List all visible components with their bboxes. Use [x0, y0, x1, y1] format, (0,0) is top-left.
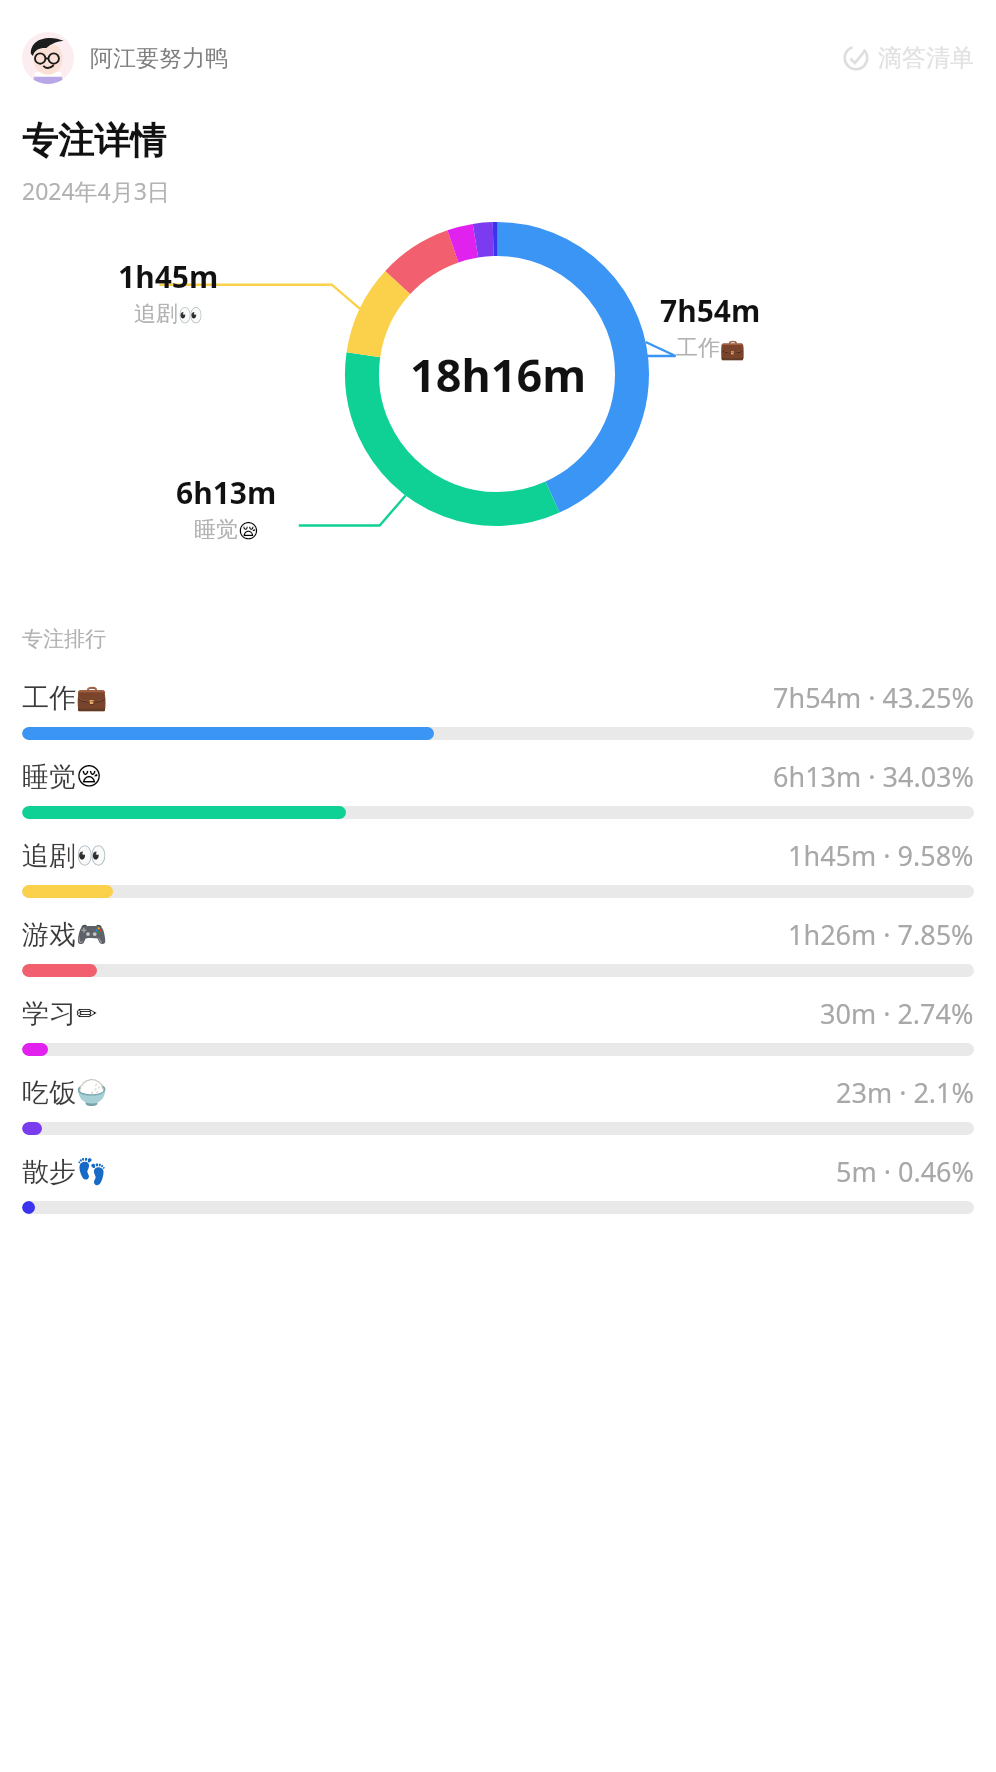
staticText: 👀 — [76, 841, 108, 870]
button[interactable]: 阿江要努力鸭 — [22, 32, 228, 84]
button[interactable]: 滴答清单 — [842, 43, 974, 73]
staticText: 😪 — [76, 762, 103, 791]
staticText: 专注详情 — [22, 118, 166, 163]
button[interactable]: 工作 — [0, 670, 996, 749]
staticText: 23m · 2.1% — [836, 1074, 974, 1111]
staticText: 工作 — [22, 681, 76, 715]
button[interactable]: 散步 — [0, 1144, 996, 1223]
staticText: 👣 — [76, 1157, 108, 1186]
button[interactable]: 追剧 — [0, 828, 996, 907]
staticText: 7h54m · 43.25% — [773, 679, 974, 716]
staticText: 5m · 0.46% — [836, 1153, 974, 1190]
staticText: 🍚 — [76, 1078, 108, 1107]
staticText: 6h13m — [176, 472, 277, 513]
button[interactable]: 学习 — [0, 986, 996, 1065]
staticText: 游戏 — [22, 918, 76, 952]
staticText: 2024年4月3日 — [22, 175, 170, 206]
staticText: 学习 — [22, 997, 76, 1031]
staticText: 工作 — [676, 334, 720, 362]
staticText: 18h16m — [410, 344, 587, 405]
button[interactable]: 游戏 — [0, 907, 996, 986]
staticText: 🎮 — [76, 920, 108, 949]
staticText: ✏️ — [76, 999, 97, 1028]
staticText: 睡觉 — [194, 516, 238, 544]
staticText: 7h54m — [660, 290, 761, 331]
staticText: 👀 — [178, 303, 203, 326]
staticText: 专注排行 — [22, 626, 106, 652]
staticText: 散步 — [22, 1155, 76, 1189]
staticText: 追剧 — [134, 300, 178, 328]
staticText: 吃饭 — [22, 1076, 76, 1110]
staticText: 睡觉 — [22, 760, 76, 794]
staticText: 滴答清单 — [878, 43, 974, 73]
staticText: 1h45m — [118, 256, 219, 297]
staticText: 追剧 — [22, 839, 76, 873]
staticText: 💼 — [76, 683, 108, 712]
staticText: 6h13m · 34.03% — [773, 758, 974, 795]
staticText: 30m · 2.74% — [820, 995, 974, 1032]
staticText: 💼 — [720, 337, 745, 360]
staticText: 1h26m · 7.85% — [788, 916, 974, 953]
button[interactable]: 睡觉 — [0, 749, 996, 828]
staticText: 阿江要努力鸭 — [90, 44, 228, 73]
button[interactable]: 吃饭 — [0, 1065, 996, 1144]
staticText: 1h45m · 9.58% — [788, 837, 974, 874]
staticText: 😪 — [238, 519, 259, 542]
